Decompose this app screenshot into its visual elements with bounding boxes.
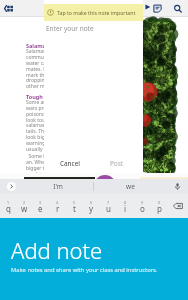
button[interactable]: 7 xyxy=(100,194,117,218)
staticText: mates. Male s xyxy=(26,66,59,73)
staticText: i xyxy=(124,203,127,214)
button[interactable]: Cancel xyxy=(58,155,82,171)
button[interactable]: Notes xyxy=(150,1,165,16)
staticText: look bigger th xyxy=(26,134,59,141)
button[interactable]: Voice input xyxy=(166,179,188,194)
staticText: e xyxy=(38,203,43,214)
button[interactable]: 5 xyxy=(66,194,83,218)
staticText: an. When thre xyxy=(26,159,60,166)
staticText: o xyxy=(140,203,145,214)
staticText: usually hard t xyxy=(26,146,58,153)
staticText: u xyxy=(106,203,111,214)
staticText: q xyxy=(6,203,11,214)
button[interactable]: Back to library xyxy=(1,1,16,16)
staticText: 7 xyxy=(107,200,110,205)
button[interactable]: 8 xyxy=(117,194,134,218)
staticText: w xyxy=(21,203,28,214)
staticText: 8 xyxy=(124,200,127,205)
staticText: mark their terr xyxy=(26,72,61,79)
staticText: Salamanders a xyxy=(26,48,61,55)
staticText: Post xyxy=(110,159,124,168)
button[interactable]: 0 xyxy=(151,194,168,218)
staticText: 3 xyxy=(39,200,42,205)
staticText: t xyxy=(73,203,76,214)
staticText: we xyxy=(126,182,135,191)
button[interactable]: Search xyxy=(170,1,185,16)
staticText: poisonous, oth xyxy=(26,111,61,118)
button[interactable]: 9 xyxy=(134,194,151,218)
staticText: salamanders r xyxy=(26,122,60,129)
staticText: Tap to make this note important xyxy=(57,9,136,16)
staticText: r xyxy=(56,203,60,214)
staticText: I'm xyxy=(53,182,63,191)
staticText: 1 xyxy=(7,200,10,205)
button[interactable]: 2 xyxy=(16,194,32,218)
button[interactable]: Expand suggestions xyxy=(0,179,22,194)
staticText: 9 xyxy=(141,200,144,205)
staticText: wars predator xyxy=(26,105,60,112)
staticText: predators. xyxy=(26,171,51,178)
button[interactable]: Backspace xyxy=(168,194,188,218)
staticText: 6 xyxy=(90,200,93,205)
staticText: Salamanders xyxy=(26,42,62,49)
staticText: 4 xyxy=(56,200,59,205)
staticText: communities i xyxy=(26,54,60,61)
staticText: 5 xyxy=(73,200,76,205)
button[interactable]: we xyxy=(94,179,166,194)
staticText: droppings and xyxy=(26,77,61,84)
staticText: Make notes and share with your class and… xyxy=(11,266,158,274)
staticText: bigger than th xyxy=(26,165,60,172)
staticText: Add note xyxy=(11,235,103,265)
button[interactable]: 6 xyxy=(83,194,100,218)
button[interactable]: 4 xyxy=(49,194,66,218)
button[interactable]: 3 xyxy=(32,194,49,218)
staticText: Some larger xyxy=(26,153,58,160)
staticText: tails. This allo xyxy=(26,128,58,135)
staticText: 2 xyxy=(23,200,26,205)
staticText: look tough. Sa xyxy=(26,117,60,124)
staticText: y xyxy=(89,203,94,214)
button[interactable]: 1 xyxy=(0,194,16,218)
button[interactable]: Tap to make this note important xyxy=(44,4,143,21)
staticText: other males xyxy=(26,83,55,90)
button[interactable]: I'm xyxy=(22,179,93,194)
staticText: Enter your note xyxy=(46,24,94,33)
staticText: warning colou xyxy=(26,140,60,147)
staticText: Some amphibi xyxy=(26,99,60,106)
staticText: Tough guy xyxy=(26,93,55,100)
staticText: Cancel xyxy=(60,159,80,168)
button[interactable]: Post xyxy=(108,155,126,171)
staticText: water can be xyxy=(26,60,57,67)
staticText: 0 xyxy=(158,200,161,205)
staticText: p xyxy=(157,203,162,214)
